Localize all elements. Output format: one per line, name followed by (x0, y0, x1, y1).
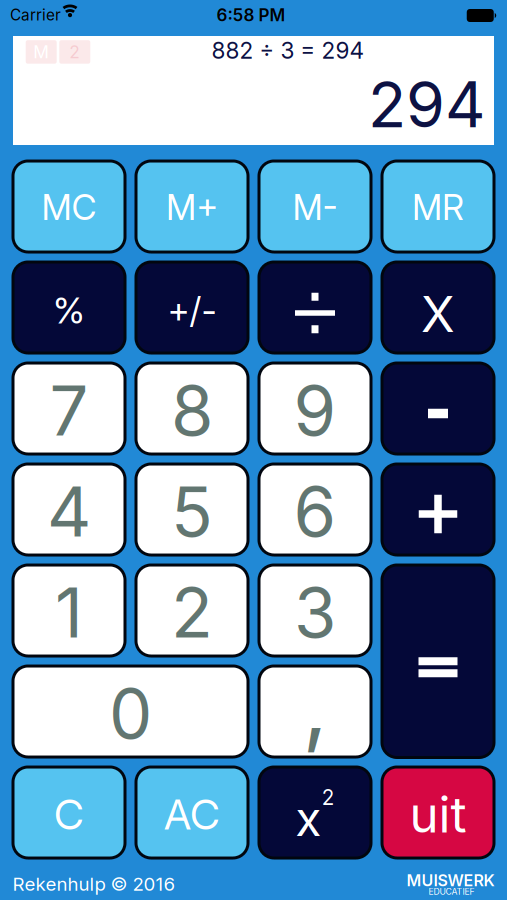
button[interactable]: squared (259, 767, 371, 858)
button[interactable]: M+ (136, 161, 248, 252)
staticText: Rekenhulp © 2016 (12, 873, 175, 895)
staticText: 5 (171, 470, 213, 553)
staticText: +/- (167, 289, 216, 331)
button[interactable]: 5 (136, 464, 248, 555)
staticText: 1 (55, 571, 83, 654)
button[interactable]: multiply (382, 262, 494, 353)
button[interactable]: 9 (259, 363, 371, 454)
staticText: 882 ÷ 3 = 294 (211, 37, 364, 64)
staticText: % (53, 289, 85, 332)
button[interactable]: percent (13, 262, 125, 353)
button[interactable]: 3 (259, 565, 371, 656)
button[interactable]: divide (259, 262, 371, 353)
staticText: 2 (171, 571, 213, 654)
button[interactable]: 7 (13, 363, 125, 454)
button[interactable]: plus (382, 464, 494, 555)
staticText: MUISWERK (406, 871, 494, 890)
staticText: 2 (69, 41, 80, 62)
button[interactable]: AC (136, 767, 248, 858)
staticText: 8 (171, 369, 213, 452)
staticText: 9 (293, 369, 336, 452)
staticText: X (421, 284, 455, 344)
staticText: Carrier (10, 6, 61, 24)
button[interactable]: minus (382, 363, 494, 454)
button[interactable]: 2 (136, 565, 248, 656)
button[interactable]: uit (382, 767, 494, 858)
button[interactable]: 8 (136, 363, 248, 454)
button[interactable]: comma (259, 666, 371, 757)
button[interactable]: MC (13, 161, 125, 252)
button[interactable]: 0 (13, 666, 248, 757)
staticText: M+ (166, 186, 218, 228)
staticText: , (302, 652, 327, 758)
staticText: 7 (49, 369, 88, 452)
staticText: 0 (109, 672, 152, 755)
button[interactable]: 4 (13, 464, 125, 555)
button[interactable]: 1 (13, 565, 125, 656)
staticText: 3 (294, 571, 336, 654)
staticText: M- (292, 186, 337, 228)
button[interactable]: C (13, 767, 125, 858)
button[interactable]: MR (382, 161, 494, 252)
button[interactable]: 6 (259, 464, 371, 555)
staticText: uit (409, 785, 466, 844)
button[interactable]: equals (382, 565, 494, 757)
staticText: x (295, 789, 321, 848)
staticText: C (54, 789, 84, 839)
staticText: 294 (368, 66, 485, 142)
staticText: MR (412, 186, 464, 228)
button[interactable]: M- (259, 161, 371, 252)
staticText: 2 (322, 785, 335, 810)
staticText: MC (41, 186, 96, 228)
staticText: 6 (293, 470, 336, 553)
staticText: AC (164, 789, 220, 839)
staticText: EDUCATIEF (428, 886, 474, 897)
staticText: 4 (47, 470, 91, 553)
staticText: M (33, 41, 49, 62)
staticText: 6:58 PM (216, 5, 285, 25)
button[interactable]: plus/minus (136, 262, 248, 353)
